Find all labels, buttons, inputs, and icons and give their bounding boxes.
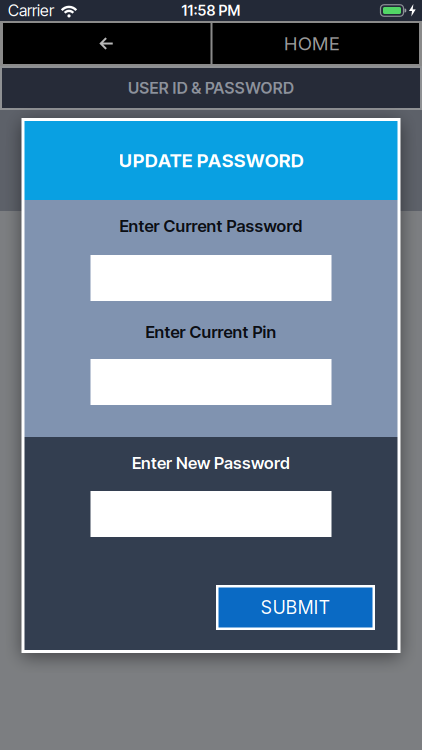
staticText: 11:58 PM [181, 2, 240, 19]
button[interactable]: SUBMIT [216, 585, 375, 630]
staticText: SUBMIT [260, 597, 330, 618]
staticText: Enter Current Password [119, 216, 302, 236]
staticText: UPDATE PASSWORD [118, 149, 303, 172]
staticText: USER ID & PASSWORD [128, 78, 294, 98]
staticText: HOME [284, 32, 340, 55]
staticText: Enter New Password [132, 453, 290, 473]
staticText: Enter Current Pin [145, 322, 276, 342]
button[interactable]: Enter New Password [90, 491, 331, 537]
button[interactable]: Back [3, 23, 210, 64]
staticText: Carrier [8, 1, 54, 20]
button[interactable]: Enter Current Password [90, 255, 331, 301]
button[interactable]: Enter Current Pin [90, 359, 331, 405]
button[interactable]: HOME [212, 23, 419, 64]
